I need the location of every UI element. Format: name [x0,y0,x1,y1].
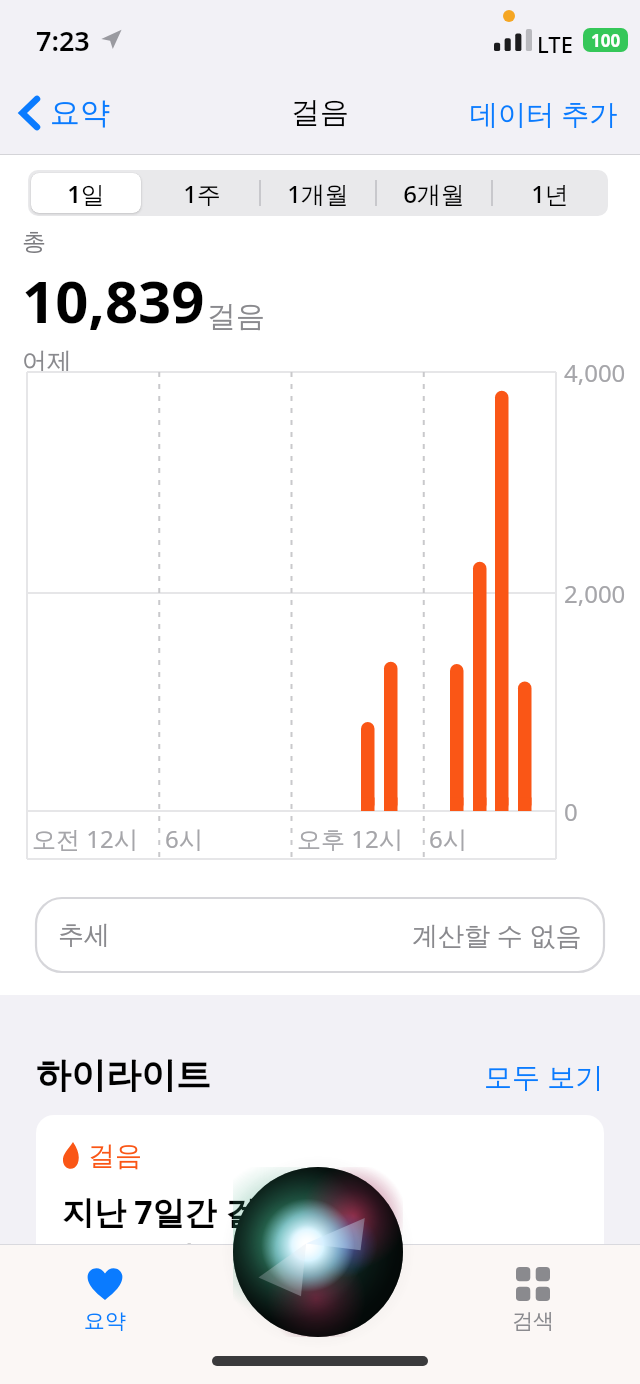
staticText: 추세 [58,919,110,952]
staticText: 10,839 [22,261,205,340]
staticText: 오후 12시 [297,822,403,855]
button[interactable]: 1개월 [260,170,376,216]
staticText: 6시 [165,822,203,855]
button[interactable]: 요약 [28,1261,182,1340]
staticText: 총 [22,227,46,257]
staticText: 1개월 [287,177,349,210]
button[interactable]: 데이터 추가 [462,88,626,138]
staticText: 걸음 [291,94,349,131]
staticText: 걸음 [88,1139,142,1173]
staticText: 1년 [531,177,569,210]
staticText: 0 [564,795,578,828]
staticText: 6시 [429,822,467,855]
staticText: 4,000 [564,356,626,389]
button[interactable]: 요약 [14,88,116,138]
staticText: 걸음 [207,298,265,335]
staticText: 10,891걸음이 [62,1235,259,1245]
button[interactable]: 6개월 [376,170,492,216]
button[interactable]: 검색 [456,1261,610,1340]
staticText: 6개월 [403,177,465,210]
staticText: 지난 7일간 걸음 [62,1190,289,1234]
button[interactable]: 걸음 [36,1115,604,1245]
staticText: LTE [537,29,573,59]
staticText: 2,000 [564,577,626,610]
staticText: 1일 [67,177,105,210]
staticText: 검색 [512,1308,554,1334]
staticText: 1주 [183,177,221,210]
button[interactable]: 추세 [36,898,604,972]
staticText: 7:23 [36,22,90,59]
other: Siri [0,0,640,1384]
staticText: 계산할 수 없음 [412,917,582,953]
staticText: 모두 보기 [484,1057,604,1095]
button[interactable]: 1주 [144,170,260,216]
staticText: 오전 12시 [32,822,138,855]
staticText: 하이라이트 [36,1053,211,1097]
button[interactable]: 1년 [492,170,608,216]
staticText: 어제 [22,346,72,377]
staticText: 데이터 추가 [470,94,618,132]
staticText: 100 [591,29,621,52]
staticText: 요약 [84,1308,126,1334]
button[interactable]: 1일 [28,170,144,216]
staticText: 요약 [50,94,110,132]
button[interactable] [233,1167,403,1337]
button[interactable]: 모두 보기 [476,1053,612,1099]
